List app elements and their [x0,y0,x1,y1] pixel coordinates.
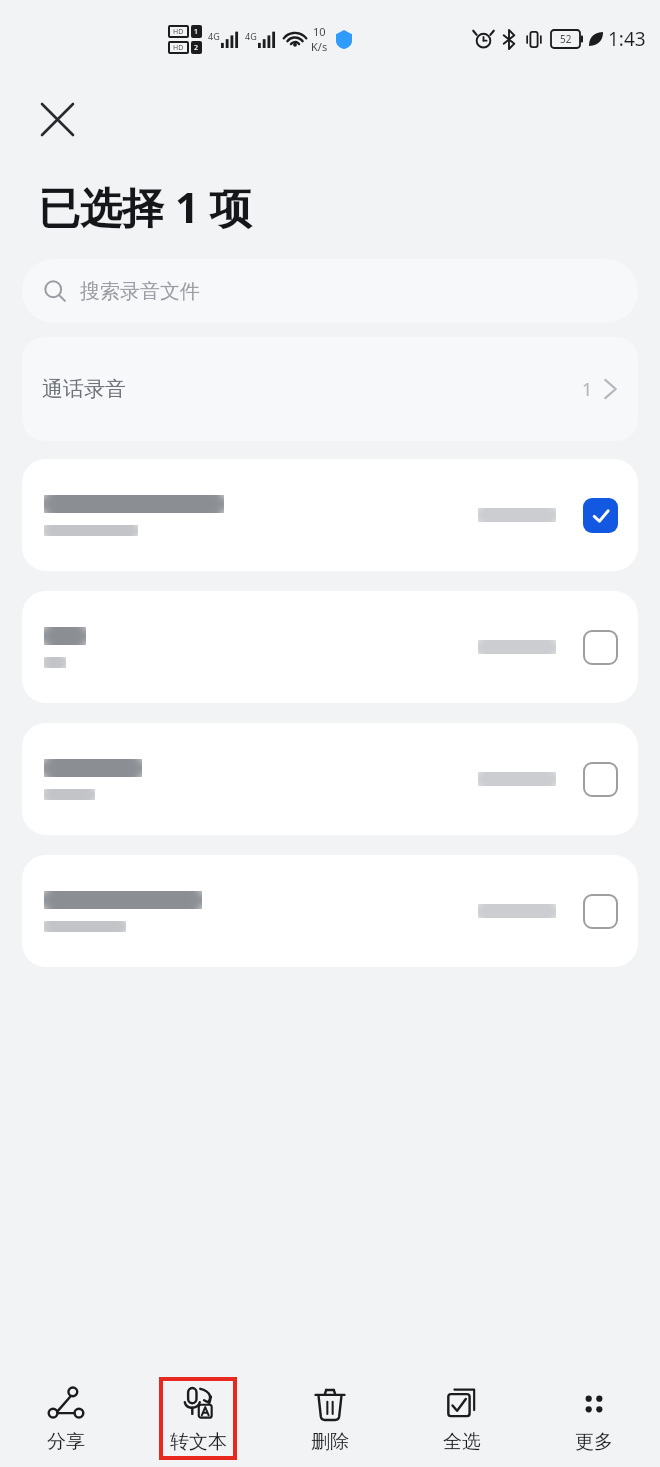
staticText: 10 [313,24,326,39]
staticText: 删除 [311,1430,349,1454]
button[interactable]: Not selected [574,753,626,805]
staticText: 1 [194,27,199,37]
staticText: 4G [245,30,257,42]
button[interactable]: Selected [22,459,638,571]
button[interactable]: Not selected [22,855,638,967]
button[interactable]: Not selected [574,621,626,673]
staticText: HD [173,27,184,37]
button[interactable]: 搜索录音文件 [22,259,638,323]
button[interactable]: Selected [574,489,626,541]
button[interactable]: Not selected [574,885,626,937]
button[interactable]: 更多 [555,1377,633,1460]
button[interactable]: Not selected [22,591,638,703]
staticText: K/s [311,39,328,54]
staticText: 已选择 1 项 [38,178,252,235]
staticText: 2 [194,43,199,53]
staticText: 1 [582,377,593,402]
button[interactable]: Close [28,90,86,148]
staticText: 更多 [575,1430,613,1454]
staticText: 搜索录音文件 [80,279,200,304]
button[interactable]: 转文本 [159,1377,237,1460]
button[interactable]: 全选 [423,1377,501,1460]
staticText: 全选 [443,1430,481,1454]
staticText: 1:43 [608,26,646,52]
staticText: 通话录音 [42,376,126,402]
staticText: HD [173,43,184,53]
staticText: 52 [560,32,572,46]
staticText: 分享 [47,1430,85,1454]
staticText: 转文本 [170,1430,227,1454]
staticText: 4G [208,30,220,42]
button[interactable]: 分享 [27,1377,105,1460]
button[interactable]: Not selected [22,723,638,835]
button[interactable]: 通话录音 [22,337,638,441]
button[interactable]: 删除 [291,1377,369,1460]
